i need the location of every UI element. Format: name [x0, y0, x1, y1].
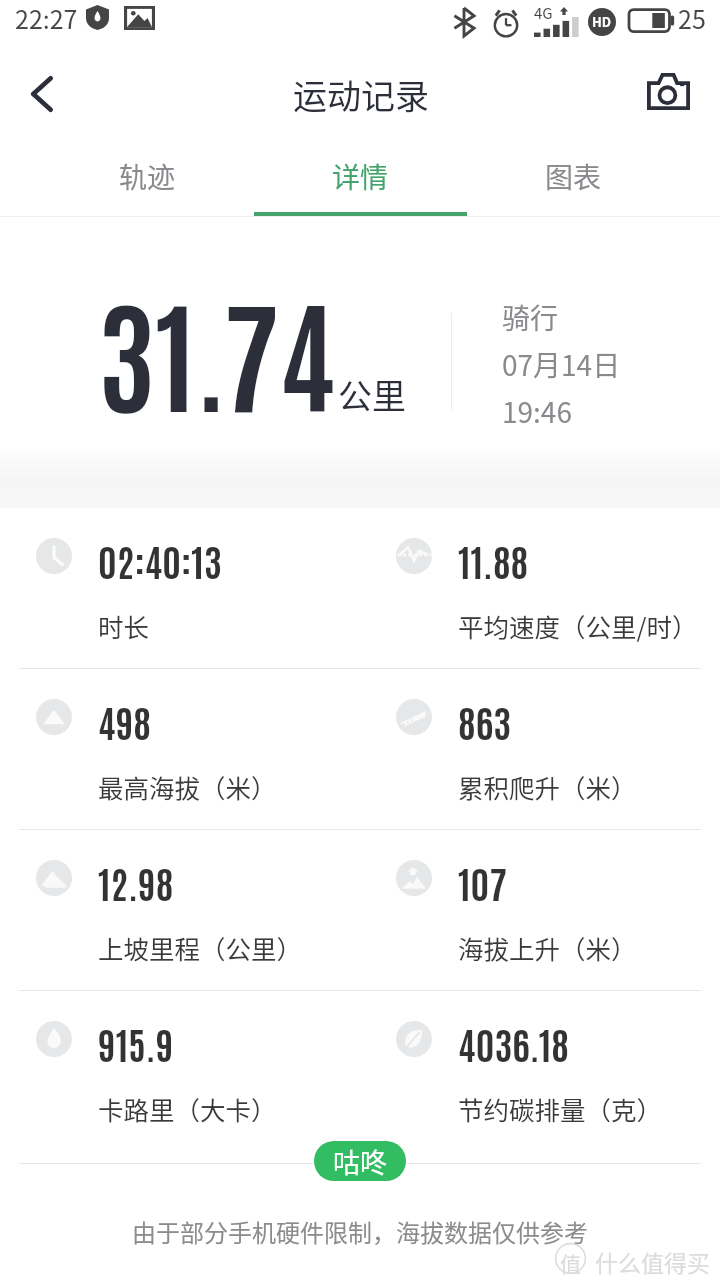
- button[interactable]: 12.98: [0, 830, 360, 990]
- button[interactable]: 咕咚: [314, 1141, 406, 1181]
- staticText: 卡路里（大卡）: [98, 1090, 277, 1127]
- staticText: 25: [678, 0, 706, 36]
- staticText: 平均速度（公里/时）: [458, 607, 698, 644]
- staticText: 02:40:13: [98, 535, 222, 584]
- staticText: 4G: [534, 2, 553, 24]
- staticText: 31.74: [98, 271, 336, 429]
- staticText: HD: [592, 12, 612, 31]
- staticText: 时长: [98, 607, 150, 644]
- staticText: 节约碳排量（克）: [458, 1090, 663, 1127]
- staticText: 公里: [338, 370, 406, 419]
- staticText: 07月14日: [502, 344, 621, 385]
- button[interactable]: 轨迹: [40, 144, 254, 216]
- button[interactable]: 863: [360, 669, 720, 829]
- staticText: 什么值得买: [595, 1245, 710, 1278]
- staticText: 运动记录: [293, 70, 429, 119]
- staticText: 累积爬升（米）: [458, 768, 637, 805]
- staticText: 骑行: [502, 297, 559, 338]
- staticText: 4036.18: [458, 1018, 569, 1067]
- staticText: 轨迹: [119, 156, 176, 197]
- button[interactable]: 4036.18: [360, 991, 720, 1163]
- staticText: 咕咚: [333, 1142, 387, 1181]
- staticText: 海拔上升（米）: [458, 929, 637, 966]
- staticText: 498: [98, 696, 151, 745]
- staticText: 最高海拔（米）: [98, 768, 277, 805]
- staticText: 上坡里程（公里）: [98, 929, 303, 966]
- staticText: 22:27: [15, 0, 78, 36]
- button[interactable]: 图表: [467, 144, 680, 216]
- button[interactable]: Camera: [632, 59, 704, 123]
- staticText: 由于部分手机硬件限制，海拔数据仅供参考: [0, 1214, 720, 1249]
- staticText: 107: [458, 857, 507, 906]
- button[interactable]: 11.88: [360, 508, 720, 668]
- staticText: 12.98: [98, 857, 174, 906]
- staticText: 19:46: [502, 391, 572, 432]
- button[interactable]: 107: [360, 830, 720, 990]
- staticText: 11.88: [458, 535, 529, 584]
- staticText: 图表: [545, 156, 602, 197]
- staticText: 915.9: [98, 1018, 174, 1067]
- staticText: 863: [458, 696, 512, 745]
- staticText: 详情: [332, 156, 389, 197]
- button[interactable]: 02:40:13: [0, 508, 360, 668]
- button[interactable]: Back: [6, 58, 78, 130]
- button[interactable]: 915.9: [0, 991, 360, 1163]
- button[interactable]: 498: [0, 669, 360, 829]
- staticText: 值: [560, 1248, 581, 1278]
- button[interactable]: 详情: [254, 144, 467, 216]
